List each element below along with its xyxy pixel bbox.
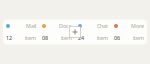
staticText: item — [25, 34, 36, 42]
button[interactable]: Docs — [39, 20, 75, 32]
staticText: Chat — [97, 22, 108, 30]
staticText: Mail — [26, 22, 36, 30]
button[interactable]: Add — [69, 26, 80, 37]
staticText: 24 — [78, 34, 84, 42]
button[interactable]: More — [111, 20, 147, 32]
staticText: item — [61, 34, 72, 42]
staticText: item — [97, 34, 108, 42]
staticText: 08 — [42, 34, 48, 42]
staticText: Docs — [59, 22, 72, 30]
button[interactable]: Chat — [75, 20, 111, 32]
button[interactable]: Mail — [3, 20, 39, 32]
staticText: 12 — [6, 34, 12, 42]
staticText: 06 — [114, 34, 120, 42]
staticText: More — [131, 22, 144, 30]
staticText: item — [133, 34, 144, 42]
